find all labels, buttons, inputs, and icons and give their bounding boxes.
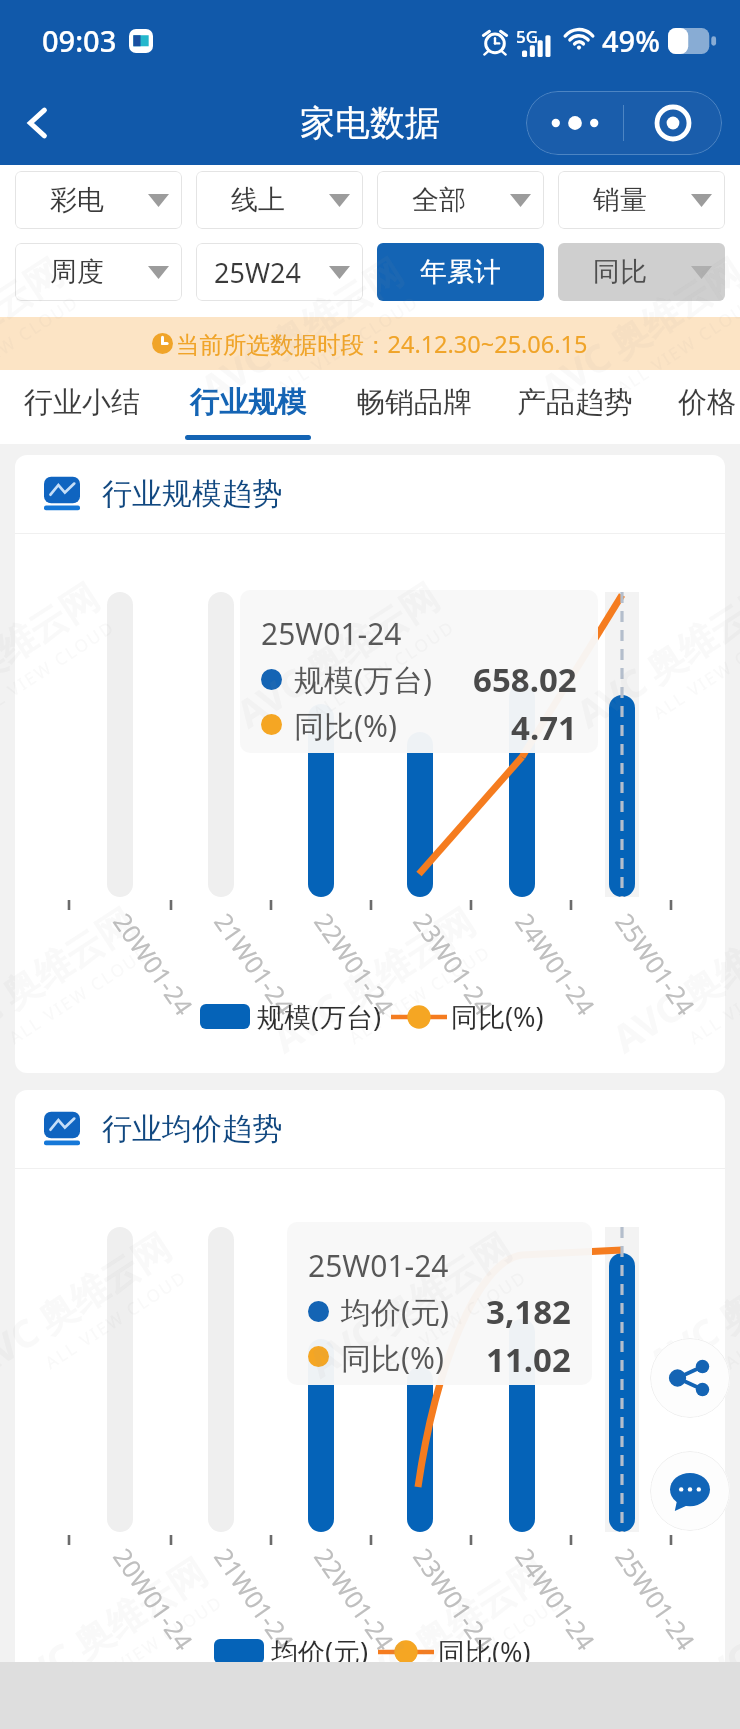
staticText: 行业规模趋势 [102, 475, 282, 513]
staticText: ALL VIEW CLOUD [612, 290, 740, 399]
staticText: ALL VIEW CLOUD [720, 1265, 740, 1374]
staticText: 线上 [231, 183, 285, 217]
staticText: 价格 [678, 384, 736, 421]
button[interactable]: 25W24 [196, 243, 363, 301]
staticText: 23W01-24 [406, 906, 502, 1022]
button[interactable]: 销量 [558, 171, 725, 229]
staticText: ALL VIEW CLOUD [40, 1265, 191, 1374]
staticText: 年累计 [420, 255, 501, 289]
staticText: 658.02 [473, 657, 577, 702]
staticText: ALL VIEW CLOUD [272, 290, 423, 399]
staticText: ALL VIEW CLOUD [76, 1590, 227, 1699]
staticText: 奥维云网 [29, 1224, 179, 1344]
staticText: ALL VIEW CLOUD [344, 940, 495, 1049]
button[interactable]: 周度 [15, 243, 182, 301]
staticText: 同比(%) [341, 1337, 444, 1375]
button[interactable]: 价格 [678, 370, 736, 444]
staticText: 均价(元) [341, 1291, 449, 1332]
staticText: 彩电 [50, 183, 104, 217]
staticText: 奥维云网 [637, 574, 740, 694]
staticText: 当前所选数据时段：24.12.30~25.06.15 [176, 328, 588, 360]
staticText: 全部 [412, 183, 466, 217]
staticText: 24W01-24 [508, 1541, 604, 1657]
staticText: 49% [602, 21, 660, 60]
staticText: 产品趋势 [517, 384, 633, 421]
button[interactable]: 彩电 [15, 171, 182, 229]
button[interactable]: More options [526, 91, 623, 155]
staticText: AVC [674, 1630, 740, 1714]
staticText: AVC [298, 1305, 388, 1389]
staticText: ALL VIEW CLOUD [0, 615, 119, 724]
staticText: AVC [0, 1305, 48, 1389]
staticText: AVC [602, 980, 692, 1064]
staticText: 奥维云网 [297, 574, 447, 694]
staticText: 奥维云网 [65, 1549, 215, 1669]
staticText: AVC [226, 655, 316, 739]
button[interactable]: Back [0, 85, 76, 161]
staticText: 25W01-24 [308, 1245, 449, 1286]
staticText: AVC [566, 655, 656, 739]
staticText: 奥维云网 [333, 899, 483, 1019]
staticText: AVC [334, 1630, 424, 1714]
staticText: 23W01-24 [406, 1541, 502, 1657]
staticText: ALL VIEW CLOUD [648, 615, 740, 724]
staticText: 规模(万台) [257, 998, 382, 1035]
staticText: 5G [516, 25, 539, 48]
staticText: 21W01-24 [207, 1541, 303, 1657]
staticText: 同比(%) [451, 998, 544, 1035]
staticText: 奥维云网 [673, 899, 740, 1019]
staticText: 奥维云网 [709, 1224, 740, 1344]
staticText: 畅销品牌 [356, 384, 472, 421]
staticText: 周度 [50, 255, 104, 289]
button[interactable]: Share [650, 1338, 730, 1418]
staticText: 家电数据 [300, 101, 440, 145]
staticText: ALL VIEW CLOUD [0, 290, 83, 399]
button[interactable]: 年累计 [377, 243, 544, 301]
staticText: 11.02 [486, 1337, 571, 1375]
staticText: 奥维云网 [601, 249, 740, 369]
staticText: 22W01-24 [307, 906, 403, 1022]
staticText: 同比 [593, 255, 647, 289]
staticText: 奥维云网 [0, 249, 71, 369]
staticText: 奥维云网 [405, 1549, 555, 1669]
staticText: 奥维云网 [261, 249, 411, 369]
button[interactable]: 产品趋势 [517, 370, 633, 444]
staticText: 行业规模 [190, 384, 306, 421]
staticText: 20W01-24 [106, 1541, 202, 1657]
staticText: 22W01-24 [307, 1541, 403, 1657]
staticText: 同比(%) [438, 1633, 531, 1670]
button[interactable]: 全部 [377, 171, 544, 229]
staticText: 21W01-24 [207, 906, 303, 1022]
staticText: AVC [0, 1630, 84, 1714]
staticText: AVC [638, 1305, 728, 1389]
button[interactable]: 行业小结 [24, 370, 140, 444]
staticText: ALL VIEW CLOUD [684, 940, 740, 1049]
staticText: 同比(%) [294, 705, 397, 743]
staticText: 3,182 [486, 1289, 571, 1334]
staticText: 奥维云网 [0, 899, 143, 1019]
button[interactable]: Close mini program [624, 91, 722, 155]
staticText: AVC [530, 330, 620, 414]
staticText: 09:03 [42, 21, 117, 60]
button[interactable]: Feedback [650, 1451, 730, 1531]
staticText: AVC [262, 980, 352, 1064]
button[interactable]: 线上 [196, 171, 363, 229]
staticText: 奥维云网 [369, 1224, 519, 1344]
staticText: AVC [190, 330, 280, 414]
staticText: 25W24 [214, 254, 301, 291]
staticText: 4.71 [511, 705, 577, 743]
staticText: 行业小结 [24, 384, 140, 421]
staticText: 25W01-24 [261, 613, 402, 654]
staticText: 行业均价趋势 [102, 1110, 282, 1148]
staticText: 20W01-24 [106, 906, 202, 1022]
staticText: ALL VIEW CLOUD [416, 1590, 567, 1699]
button[interactable]: 畅销品牌 [356, 370, 472, 444]
button[interactable]: 行业规模 [185, 370, 311, 444]
staticText: 24W01-24 [508, 906, 604, 1022]
staticText: 销量 [593, 183, 647, 217]
staticText: 奥维云网 [0, 574, 107, 694]
button[interactable]: 同比 [558, 243, 725, 301]
staticText: ALL VIEW CLOUD [308, 615, 459, 724]
staticText: 25W01-24 [608, 906, 704, 1022]
